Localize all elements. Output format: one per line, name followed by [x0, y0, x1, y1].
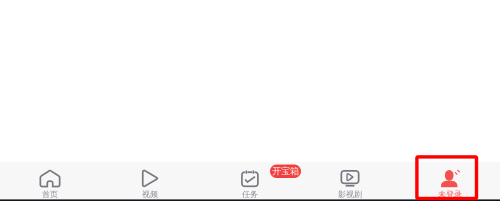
button[interactable]: 首页 [0, 163, 100, 199]
staticText: 开宝箱 [272, 165, 299, 177]
button[interactable]: 视频 [100, 163, 200, 199]
staticText: 影视剧 [338, 189, 362, 199]
staticText: 未登录 [438, 189, 462, 199]
button[interactable]: 影视剧 [300, 163, 400, 199]
staticText: 任务 [242, 189, 258, 199]
staticText: 视频 [142, 189, 158, 199]
staticText: 首页 [42, 189, 58, 199]
button[interactable]: 未登录 [400, 163, 500, 199]
button[interactable]: 任务 [200, 163, 300, 199]
